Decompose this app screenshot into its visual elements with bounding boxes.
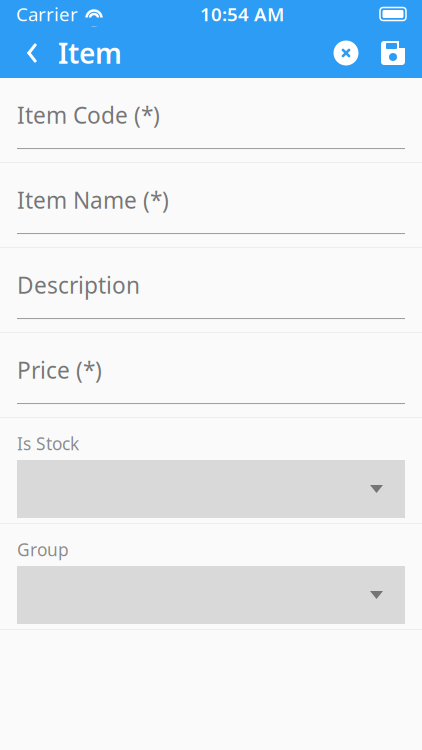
staticText: Item Code (*) bbox=[17, 100, 160, 130]
staticText: Price (*) bbox=[17, 355, 102, 385]
staticText: Is Stock bbox=[17, 432, 79, 455]
button[interactable]: Price (*) bbox=[0, 333, 422, 417]
button[interactable]: Group bbox=[0, 524, 422, 629]
button[interactable]: Back bbox=[10, 28, 54, 78]
button[interactable]: Is Stock bbox=[0, 418, 422, 523]
staticText: Item bbox=[58, 34, 122, 72]
button[interactable]: Item Code (*) bbox=[0, 78, 422, 162]
button[interactable]: Cancel bbox=[322, 28, 370, 78]
staticText: 10:54 AM bbox=[200, 2, 284, 26]
button[interactable]: Save bbox=[370, 28, 416, 78]
staticText: Carrier bbox=[16, 2, 78, 26]
staticText: Item Name (*) bbox=[17, 185, 169, 215]
button[interactable]: Description bbox=[0, 248, 422, 332]
button[interactable]: Item Name (*) bbox=[0, 163, 422, 247]
staticText: Group bbox=[17, 538, 69, 561]
staticText: Description bbox=[17, 270, 140, 300]
